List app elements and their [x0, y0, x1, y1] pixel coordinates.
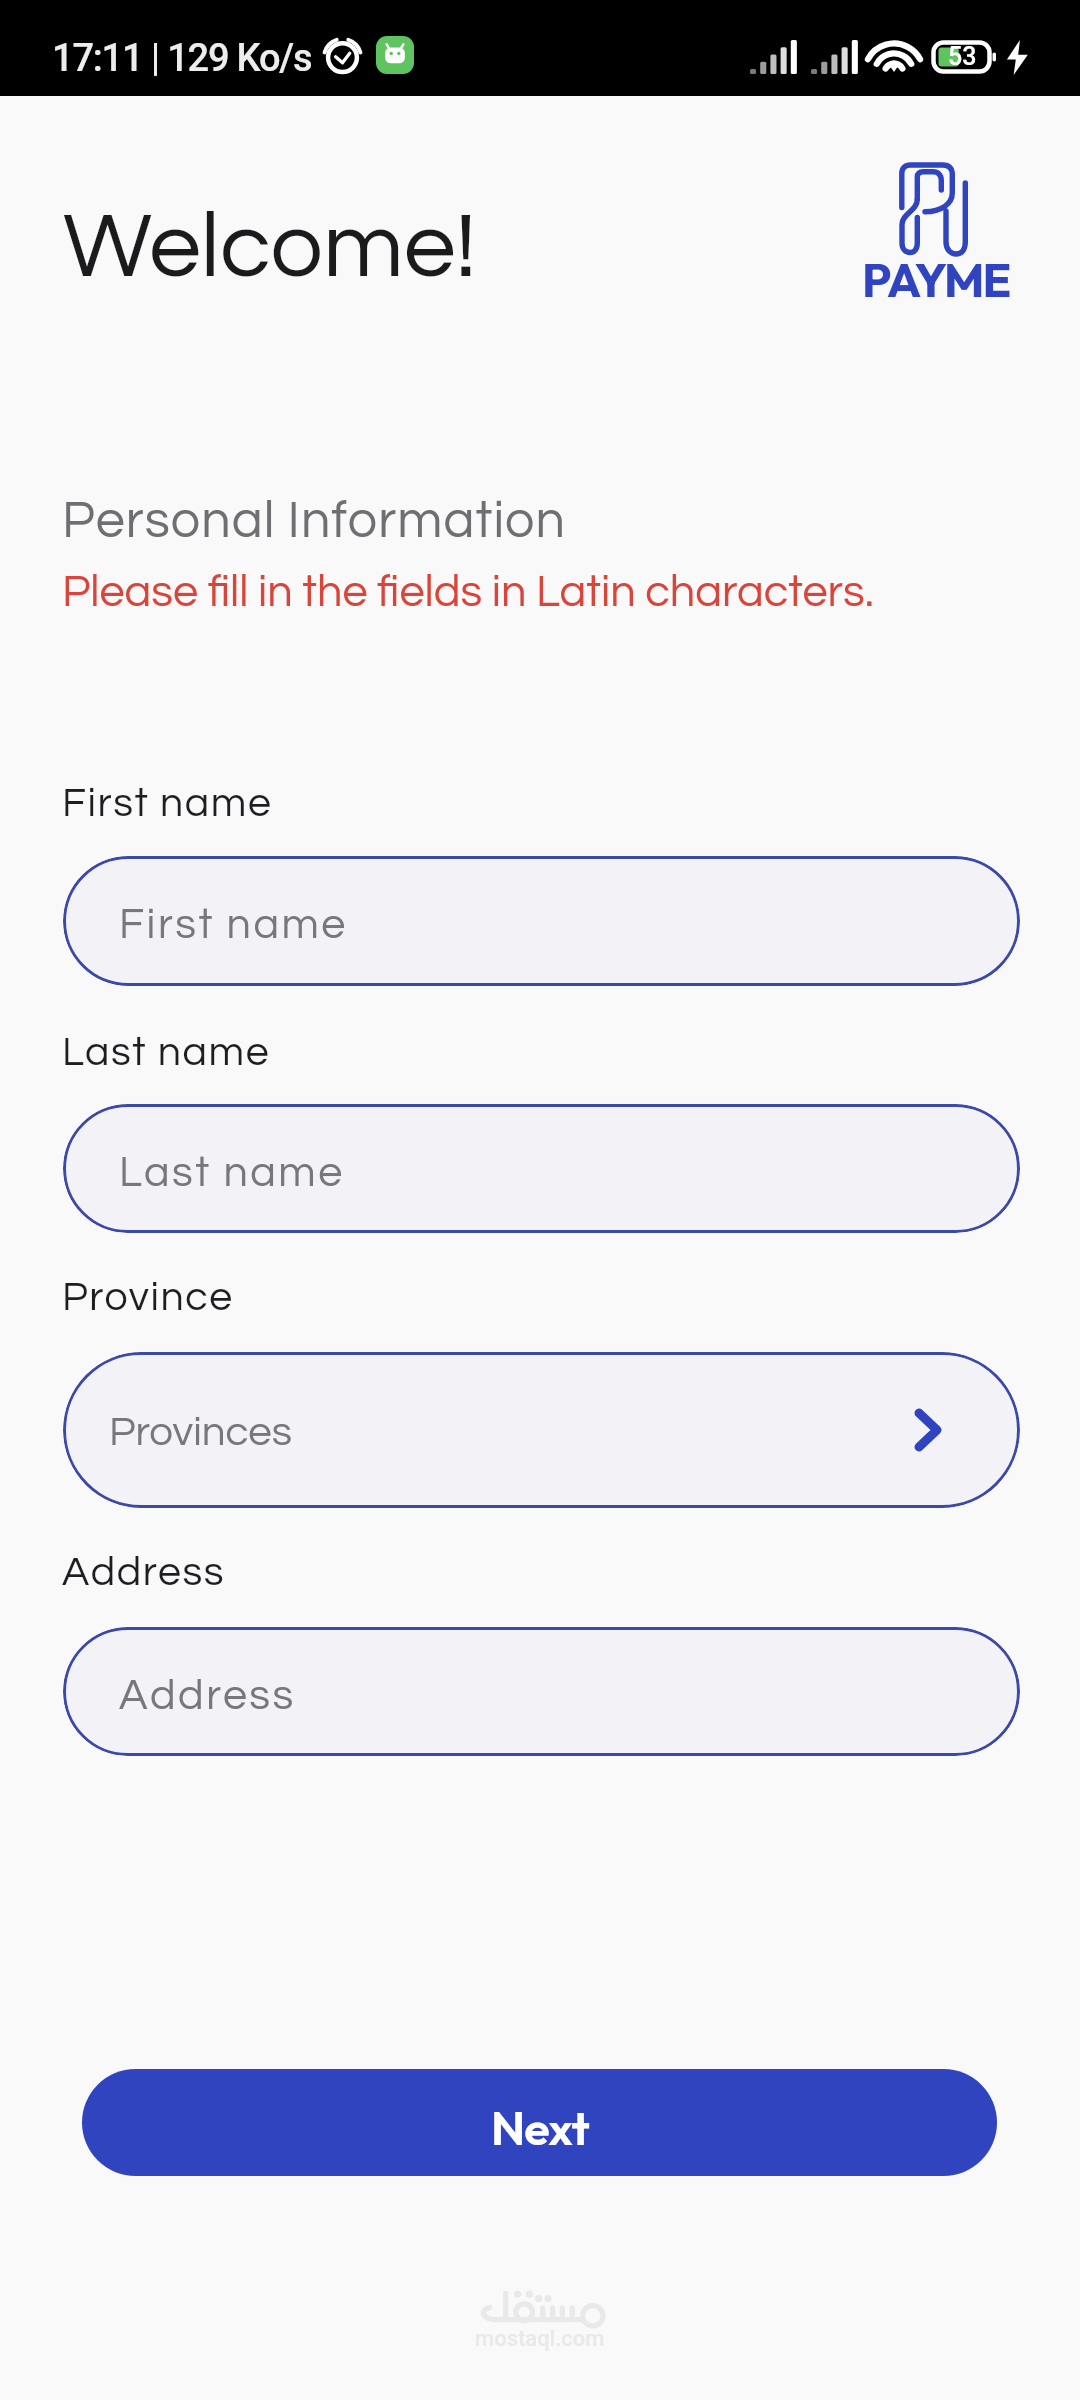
button[interactable]: Next: [82, 2069, 997, 2176]
button[interactable]: First name: [63, 856, 1020, 986]
staticText: Please fill in the fields in Latin chara…: [62, 569, 874, 615]
button[interactable]: Provinces: [63, 1352, 1020, 1508]
staticText: Personal Information: [62, 494, 566, 548]
staticText: Welcome!: [63, 200, 477, 296]
staticText: Last name: [62, 1031, 271, 1073]
staticText: Address: [62, 1551, 226, 1593]
staticText: First name: [62, 782, 273, 824]
staticText: Address: [119, 1674, 296, 1718]
staticText: Provinces: [109, 1411, 292, 1454]
staticText: PAYME: [862, 250, 1010, 309]
staticText: mostaql.com: [475, 2326, 605, 2352]
staticText: 17:11 | 129 Ko/s: [52, 36, 312, 81]
staticText: Province: [62, 1276, 234, 1318]
staticText: 53: [948, 42, 977, 71]
staticText: Next: [491, 2098, 589, 2157]
staticText: Last name: [119, 1151, 345, 1195]
staticText: First name: [119, 903, 348, 947]
other: Select province: [915, 1409, 941, 1451]
button[interactable]: Last name: [63, 1104, 1020, 1233]
button[interactable]: Address: [63, 1627, 1020, 1756]
